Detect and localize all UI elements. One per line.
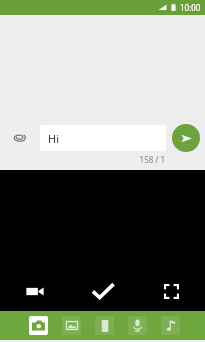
staticText: Hi — [48, 131, 59, 146]
button[interactable]: Music — [154, 311, 187, 340]
button[interactable]: Hi — [40, 125, 166, 151]
button[interactable]: Video — [88, 311, 121, 340]
button[interactable]: Send — [166, 122, 205, 154]
button[interactable]: Fullscreen — [137, 271, 205, 311]
staticText: 10:00 — [180, 2, 201, 13]
button[interactable]: Camera — [22, 311, 55, 340]
button[interactable]: Audio recording — [121, 311, 154, 340]
button[interactable]: Attach file — [0, 122, 40, 154]
staticText: 158 / 1 — [139, 154, 165, 165]
button[interactable]: Switch to video — [0, 271, 69, 311]
button[interactable]: Gallery — [55, 311, 88, 340]
button[interactable]: Accept — [69, 271, 137, 311]
